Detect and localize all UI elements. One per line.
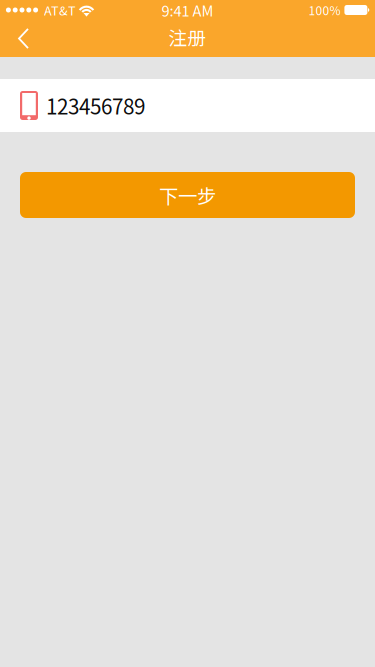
staticText: 9:41 AM: [161, 0, 213, 21]
staticText: 100%: [308, 1, 340, 19]
staticText: AT&T: [44, 1, 76, 19]
button[interactable]: Back: [0, 20, 56, 57]
staticText: 注册: [168, 23, 206, 50]
staticText: 123456789: [46, 90, 145, 120]
button[interactable]: 下一步: [20, 172, 355, 218]
staticText: 下一步: [159, 181, 216, 209]
button[interactable]: 123456789: [0, 79, 375, 132]
